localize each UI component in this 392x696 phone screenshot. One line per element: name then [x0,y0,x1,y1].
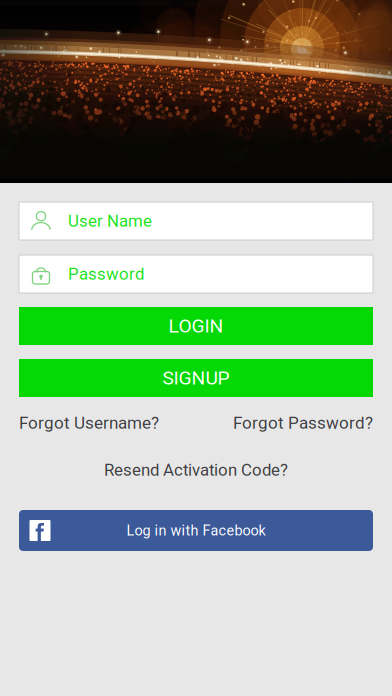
staticText: SIGNUP [162,367,229,389]
button[interactable]: SIGNUP [19,359,373,397]
button[interactable]: Password [19,255,373,293]
staticText: Forgot Password? [233,413,373,433]
staticText: User Name [68,211,152,231]
staticText: Log in with Facebook [126,522,265,539]
button[interactable]: Log in with Facebook [19,510,373,551]
button[interactable]: User Name [19,202,373,240]
staticText: Forgot Username? [19,413,159,433]
button[interactable]: Forgot Password? [233,413,373,433]
staticText: LOGIN [168,315,223,337]
staticText: Resend Activation Code? [104,460,288,480]
button[interactable]: Forgot Username? [19,413,159,433]
button[interactable]: LOGIN [19,307,373,345]
staticText: Password [68,264,144,284]
button[interactable]: Resend Activation Code? [104,460,288,480]
